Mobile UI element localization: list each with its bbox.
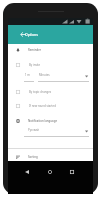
staticText: Notification language (28, 119, 57, 123)
button[interactable]: Recent apps (66, 166, 78, 178)
staticText: Options (25, 32, 38, 37)
button[interactable]: 1 m (24, 73, 34, 82)
staticText: By invite (29, 63, 41, 67)
button[interactable]: Русский (24, 128, 89, 137)
staticText: By topic changes (29, 90, 52, 94)
button[interactable]: Notification language (8, 115, 93, 127)
staticText: Русский (28, 128, 39, 132)
staticText: Reminder (28, 48, 42, 52)
button[interactable]: If new round started (8, 100, 93, 112)
button[interactable]: Sorting (8, 151, 93, 163)
staticText: If new round started (29, 104, 56, 108)
staticText: Sorting (28, 155, 38, 159)
button[interactable]: Minutes (38, 73, 89, 82)
staticText: 1 m (25, 73, 30, 77)
button[interactable]: Reminder (8, 44, 93, 56)
button[interactable]: Back (21, 166, 33, 178)
button[interactable]: Home (44, 166, 56, 178)
button[interactable]: Back (16, 25, 30, 44)
button[interactable]: By invite (8, 59, 93, 71)
button[interactable]: By topic changes (8, 86, 93, 98)
staticText: Minutes (39, 73, 50, 77)
